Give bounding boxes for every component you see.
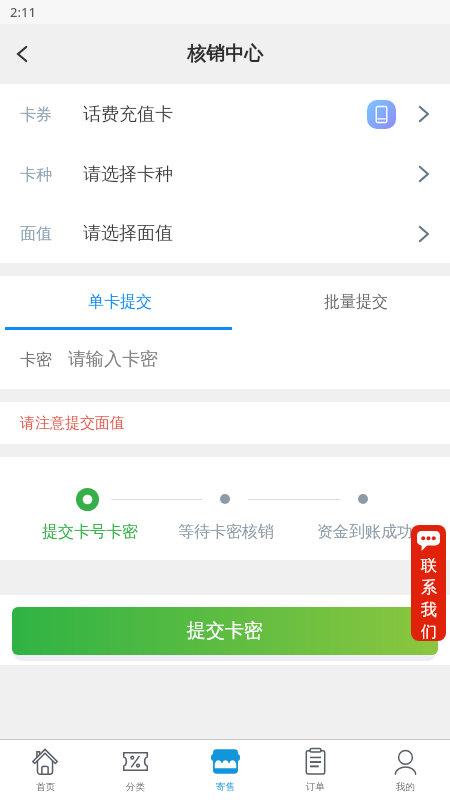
staticText: 卡密 — [20, 350, 52, 370]
button[interactable]: 分类 — [90, 740, 180, 800]
button[interactable]: 批量提交 — [262, 276, 450, 328]
button[interactable]: 提交卡密 — [12, 607, 438, 655]
staticText: 2:11 — [10, 3, 36, 21]
staticText: 首页 — [36, 781, 55, 793]
button[interactable]: 寄售 — [180, 740, 270, 800]
staticText: 寄售 — [216, 781, 235, 793]
staticText: 订单 — [306, 781, 325, 793]
staticText: 请输入卡密 — [68, 348, 158, 371]
button[interactable]: 首页 — [0, 740, 90, 800]
staticText: 单卡提交 — [88, 292, 152, 312]
button[interactable]: 面值 — [0, 204, 450, 263]
staticText: 卡券 — [20, 105, 52, 125]
staticText: 核销中心 — [187, 42, 263, 66]
staticText: 面值 — [20, 224, 52, 244]
staticText: 卡种 — [20, 165, 52, 185]
staticText: 提交卡号卡密 — [42, 522, 138, 542]
button[interactable]: 单卡提交 — [5, 276, 235, 328]
staticText: 等待卡密核销 — [178, 522, 274, 542]
staticText: 批量提交 — [324, 292, 388, 312]
staticText: 我 — [421, 600, 437, 620]
button[interactable]: 联系我们 — [411, 525, 446, 641]
staticText: 提交卡密 — [187, 619, 263, 643]
button[interactable]: 我的 — [360, 740, 450, 800]
staticText: 系 — [421, 578, 437, 598]
button[interactable]: 订单 — [270, 740, 360, 800]
staticText: 分类 — [126, 781, 145, 793]
staticText: 请选择卡种 — [83, 163, 173, 186]
staticText: 们 — [421, 622, 437, 641]
staticText: 话费充值卡 — [83, 103, 173, 126]
staticText: 联 — [421, 556, 437, 576]
staticText: 资金到账成功 — [317, 522, 413, 542]
staticText: 我的 — [396, 781, 415, 793]
staticText: 请注意提交面值 — [20, 414, 125, 433]
button[interactable]: Back — [0, 24, 44, 84]
staticText: 请选择面值 — [83, 222, 173, 245]
button[interactable]: 卡券 — [0, 84, 450, 144]
button[interactable]: 卡种 — [0, 144, 450, 204]
